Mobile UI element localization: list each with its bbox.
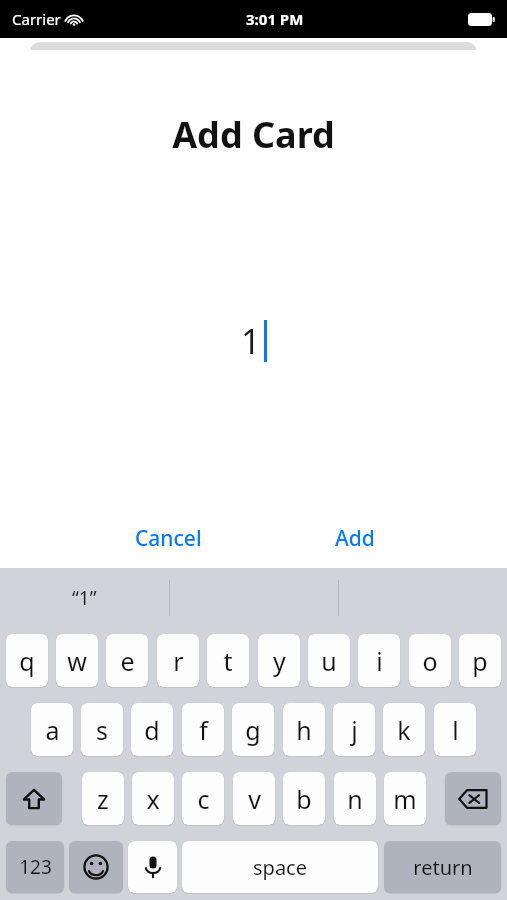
staticText: p <box>472 644 488 678</box>
staticText: Cancel <box>135 524 202 553</box>
staticText: c <box>197 782 210 816</box>
button[interactable]: h <box>283 703 325 756</box>
staticText: n <box>347 782 363 816</box>
button[interactable]: x <box>132 772 174 825</box>
button[interactable]: j <box>333 703 375 756</box>
staticText: x <box>146 782 160 816</box>
staticText: r <box>173 644 184 678</box>
button[interactable]: q <box>6 634 48 687</box>
button[interactable]: d <box>131 703 173 756</box>
staticText: z <box>97 782 109 816</box>
staticText: space <box>253 854 307 881</box>
staticText: j <box>351 713 358 747</box>
staticText: v <box>248 782 261 816</box>
staticText: l <box>452 713 459 747</box>
staticText: e <box>120 644 135 678</box>
staticText: h <box>296 713 312 747</box>
staticText: return <box>413 854 473 881</box>
staticText: t <box>223 644 233 678</box>
button[interactable]: i <box>358 634 400 687</box>
button[interactable]: r <box>157 634 199 687</box>
button[interactable]: f <box>182 703 224 756</box>
staticText: y <box>273 644 286 678</box>
staticText: 123 <box>19 854 52 880</box>
button[interactable]: k <box>383 703 425 756</box>
button[interactable]: p <box>459 634 501 687</box>
button[interactable]: v <box>233 772 275 825</box>
button[interactable]: m <box>384 772 426 825</box>
staticText: u <box>321 644 337 678</box>
staticText: w <box>67 644 87 678</box>
staticText: g <box>245 713 261 747</box>
button[interactable]: t <box>207 634 249 687</box>
button[interactable]: “1” <box>0 572 169 624</box>
staticText: “1” <box>72 585 97 611</box>
button[interactable]: n <box>334 772 376 825</box>
button[interactable]: Emoji <box>69 841 123 893</box>
button[interactable]: return <box>384 841 501 893</box>
button[interactable]: b <box>283 772 325 825</box>
button[interactable]: w <box>56 634 98 687</box>
button[interactable]: z <box>82 772 124 825</box>
staticText: q <box>19 644 35 678</box>
button[interactable]: space <box>182 841 378 893</box>
staticText: i <box>376 644 383 678</box>
button[interactable]: Dictate <box>128 841 177 893</box>
button[interactable]: Shift <box>6 772 62 825</box>
button[interactable]: s <box>81 703 123 756</box>
staticText: k <box>397 713 411 747</box>
staticText: a <box>45 713 60 747</box>
staticText: o <box>422 644 438 678</box>
staticText: Add Card <box>172 110 335 159</box>
button[interactable]: u <box>308 634 350 687</box>
staticText: 3:01 PM <box>246 9 304 29</box>
button[interactable]: Cancel <box>118 518 218 558</box>
staticText: 1 <box>241 318 261 364</box>
button[interactable]: a <box>31 703 73 756</box>
button[interactable]: 123 <box>6 841 64 893</box>
button[interactable]: g <box>232 703 274 756</box>
staticText: d <box>144 713 160 747</box>
staticText: m <box>393 782 417 816</box>
button[interactable]: l <box>434 703 476 756</box>
button[interactable]: c <box>182 772 224 825</box>
button[interactable]: y <box>258 634 300 687</box>
staticText: b <box>296 782 312 816</box>
button[interactable]: e <box>106 634 148 687</box>
staticText: f <box>199 713 208 747</box>
button[interactable]: Backspace <box>445 772 501 825</box>
staticText: Carrier <box>12 9 61 29</box>
button[interactable]: o <box>409 634 451 687</box>
button[interactable]: Add <box>315 518 395 558</box>
staticText: Add <box>335 524 375 553</box>
staticText: s <box>96 713 108 747</box>
